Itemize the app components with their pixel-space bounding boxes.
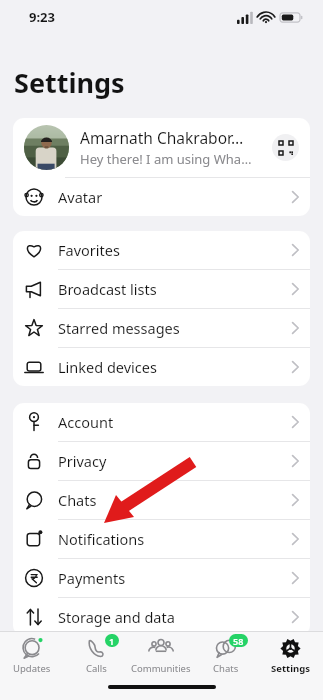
button[interactable]: Linked devices [13, 348, 310, 386]
staticText: Broadcast lists [58, 279, 292, 299]
staticText: Hey there! I am using Wha… [80, 150, 252, 168]
staticText: Account [58, 412, 292, 432]
button[interactable]: Privacy [13, 442, 310, 480]
staticText: Amarnath Chakrabor… [80, 127, 244, 148]
button[interactable]: Payments [13, 559, 310, 597]
staticText: Updates [13, 662, 51, 675]
button[interactable]: Communities [128, 632, 193, 679]
staticText: Communities [131, 662, 191, 675]
button[interactable]: Settings [258, 632, 323, 679]
button[interactable]: QR code [272, 134, 299, 161]
staticText: 58 [233, 635, 244, 647]
staticText: Chats [58, 490, 292, 510]
button[interactable]: 1 [64, 632, 128, 679]
staticText: Linked devices [58, 357, 292, 377]
button[interactable]: Account [13, 403, 310, 441]
staticText: Favorites [58, 240, 292, 260]
staticText: Settings [271, 662, 310, 675]
staticText: Starred messages [58, 318, 292, 338]
button[interactable]: Broadcast lists [13, 270, 310, 308]
button[interactable]: Chats [13, 481, 310, 519]
staticText: Avatar [58, 187, 292, 207]
button[interactable]: Notifications [13, 520, 310, 558]
button[interactable]: Updates [0, 632, 64, 679]
staticText: Payments [58, 568, 292, 588]
button[interactable]: Storage and data [13, 598, 310, 636]
staticText: Chats [213, 662, 239, 675]
staticText: Storage and data [58, 607, 292, 627]
staticText: 9:23 [29, 8, 55, 26]
button[interactable]: Favorites [13, 231, 310, 269]
staticText: Calls [86, 662, 107, 675]
staticText: Notifications [58, 529, 292, 549]
button[interactable]: Amarnath Chakrabor… [13, 118, 310, 177]
button[interactable]: Starred messages [13, 309, 310, 347]
button[interactable]: Avatar [13, 178, 310, 216]
button[interactable]: 58 [193, 632, 258, 679]
staticText: 1 [109, 635, 115, 647]
staticText: Privacy [58, 451, 292, 471]
staticText: Settings [14, 64, 125, 101]
